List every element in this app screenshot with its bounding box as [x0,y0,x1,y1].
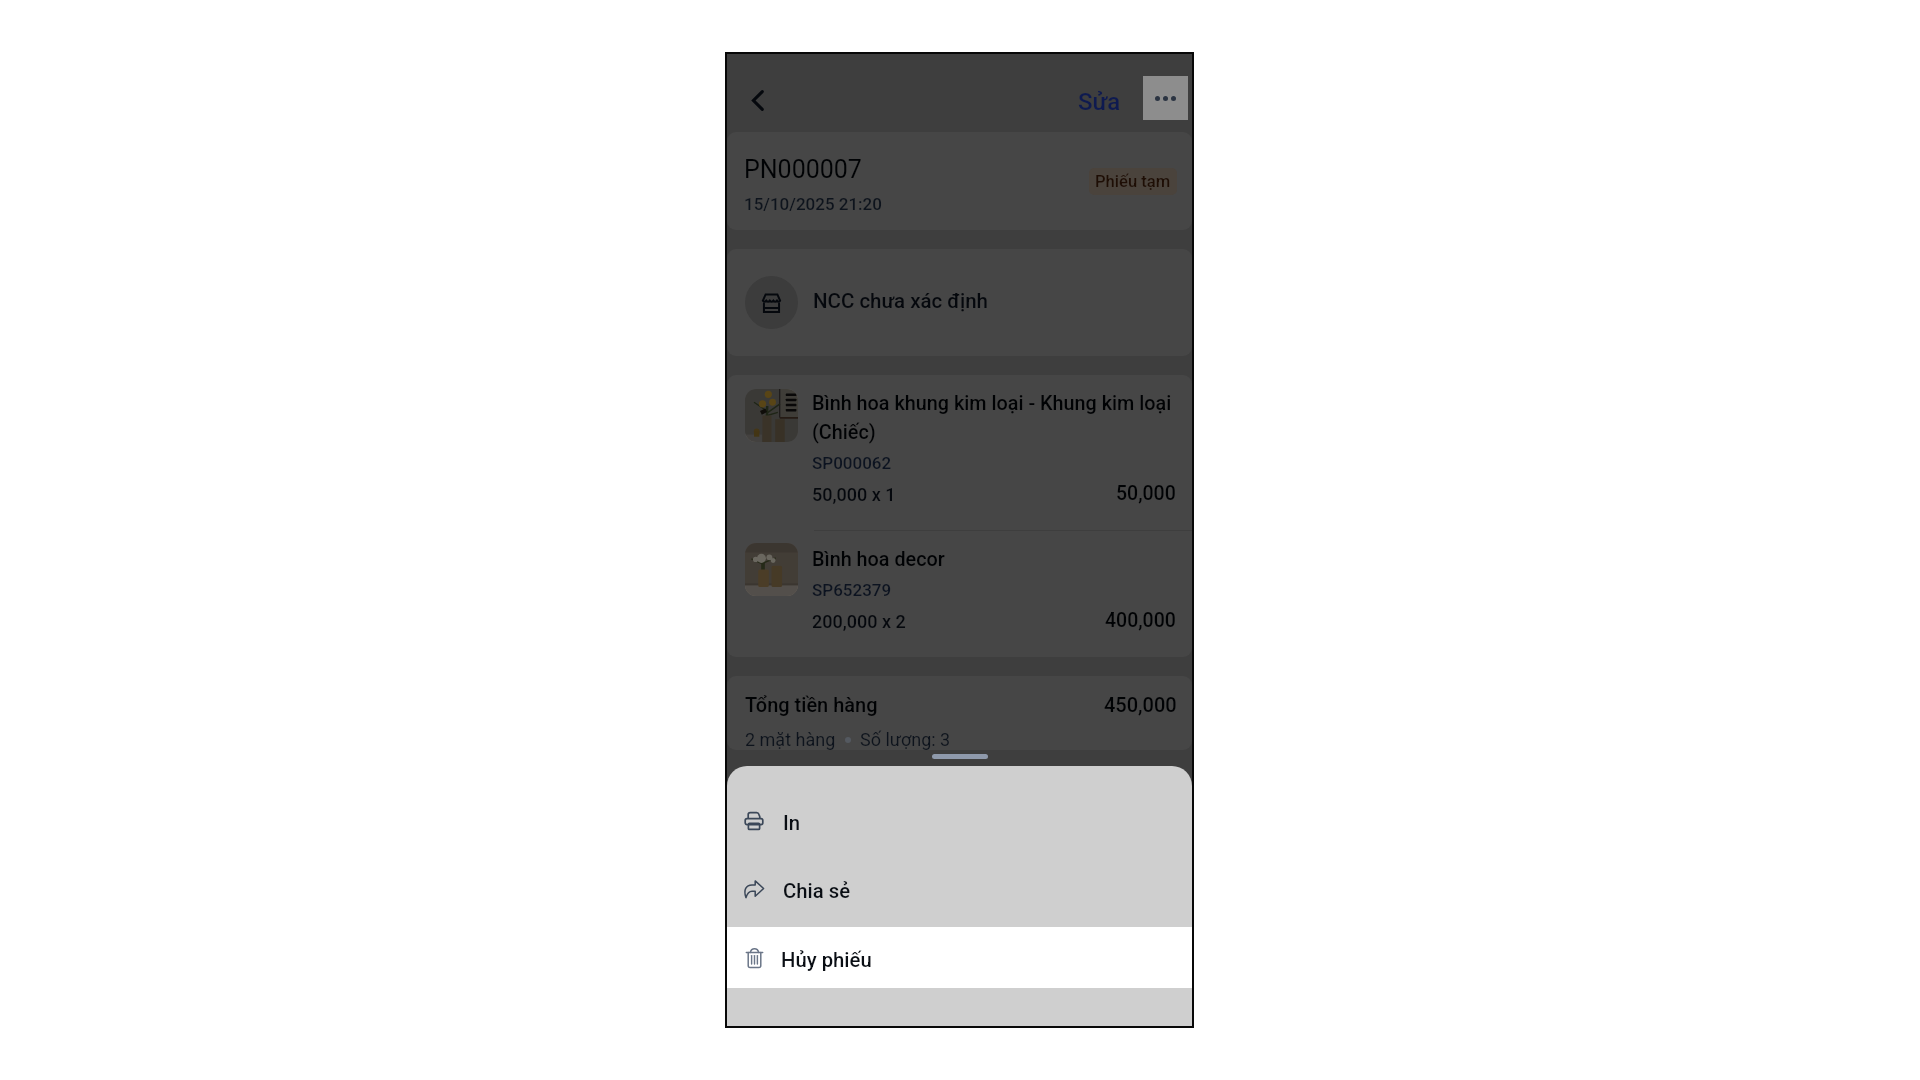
button[interactable]: NCC chưa xác định [727,249,1192,356]
staticText: Sửa [1078,88,1121,116]
staticText: 15/10/2025 21:20 [744,194,882,214]
staticText: 50,000 x 1 [812,484,896,505]
staticText: 450,000 [1104,693,1177,716]
staticText: SP652379 [812,580,892,600]
button[interactable]: Back [736,78,780,122]
button[interactable]: Bình hoa decor [727,531,1192,657]
button[interactable]: In [727,787,1192,855]
staticText: PN000007 [744,155,862,184]
staticText: Bình hoa khung kim loại - Khung kim loại… [812,392,1176,444]
button[interactable]: Hủy phiếu [727,927,1192,988]
staticText: Tổng tiền hàng [745,693,878,716]
staticText: Số lượng: 3 [860,729,951,750]
button[interactable]: Sửa [1068,79,1143,125]
staticText: NCC chưa xác định [813,289,988,313]
button[interactable]: Bình hoa khung kim loại - Khung kim loại… [727,375,1192,530]
staticText: SP000062 [812,453,892,473]
staticText: In [783,811,801,835]
staticText: 200,000 x 2 [812,611,906,632]
staticText: Hủy phiếu [781,948,872,972]
staticText: Chia sẻ [783,879,851,903]
staticText: 2 mặt hàng [745,729,836,750]
staticText: Bình hoa decor [812,548,945,571]
staticText: 400,000 [1105,609,1176,632]
staticText: 50,000 [1116,482,1176,505]
button[interactable]: More options [1143,76,1188,120]
staticText: Phiếu tạm [1095,172,1171,191]
button[interactable]: Chia sẻ [727,855,1192,923]
